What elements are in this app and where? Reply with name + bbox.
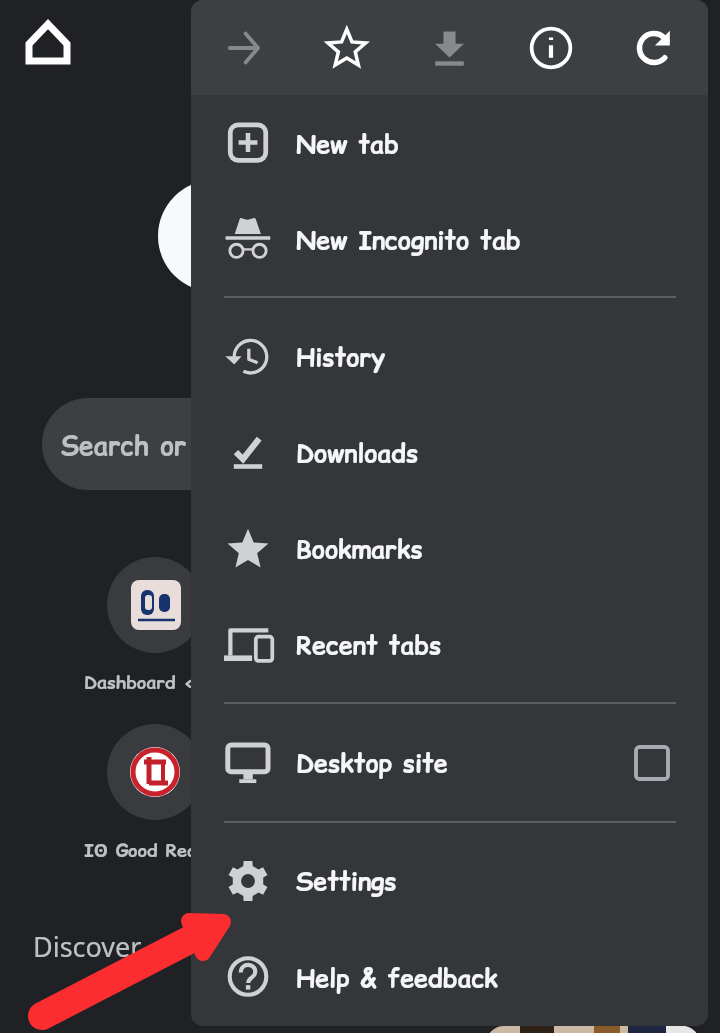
button[interactable]: Desktop site: [191, 715, 708, 811]
staticText: Downloads: [296, 436, 419, 471]
staticText: Iʘ Good Rea: [84, 838, 198, 863]
button[interactable]: Downloads: [191, 405, 708, 501]
button[interactable]: New Incognito tab: [191, 192, 708, 288]
button[interactable]: Bookmarks: [191, 501, 708, 597]
staticText: Desktop site: [296, 746, 448, 781]
staticText: New Incognito tab: [296, 223, 521, 258]
staticText: Search or t: [61, 428, 210, 464]
button[interactable]: Recent tabs: [191, 597, 708, 693]
staticText: History: [296, 340, 386, 375]
button[interactable]: Help & feedback: [191, 930, 708, 1026]
button[interactable]: Reload: [612, 5, 696, 90]
button[interactable]: Page info: [509, 5, 593, 90]
button[interactable]: Forward: [202, 5, 286, 90]
staticText: Bookmarks: [296, 532, 423, 567]
staticText: New tab: [296, 127, 399, 162]
button[interactable]: Bookmark: [304, 5, 388, 90]
button[interactable]: Settings: [191, 833, 708, 929]
staticText: Dashboard ‹: [84, 670, 195, 695]
button[interactable]: History: [191, 309, 708, 405]
staticText: Help & feedback: [296, 961, 498, 996]
staticText: Recent tabs: [296, 628, 442, 663]
button[interactable]: Download page: [407, 5, 491, 90]
button[interactable]: New tab: [191, 96, 708, 192]
staticText: Discover: [33, 928, 142, 965]
staticText: Settings: [296, 864, 397, 899]
